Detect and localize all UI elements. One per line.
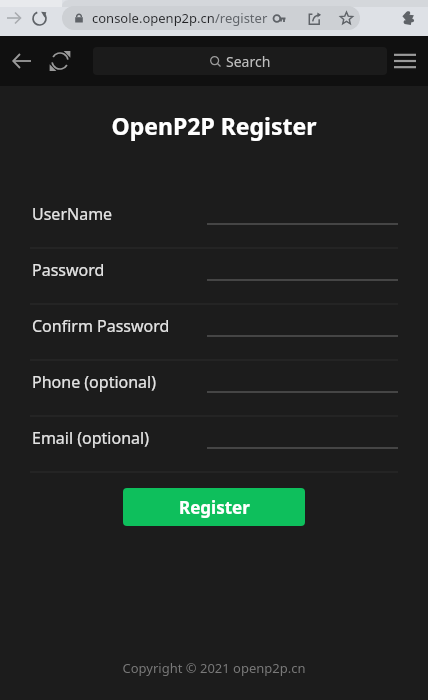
button[interactable]: Back: [8, 47, 36, 75]
staticText: Copyright © 2021 openp2p.cn: [0, 659, 428, 677]
button[interactable]: Confirm Password: [0, 305, 428, 361]
staticText: Email (optional): [32, 427, 149, 449]
button[interactable]: Password: [0, 249, 428, 305]
button[interactable]: Phone (optional): [0, 361, 428, 417]
staticText: Register: [179, 496, 250, 519]
button[interactable]: console.openp2p.cn: [62, 6, 360, 30]
staticText: Password: [32, 259, 105, 281]
staticText: Phone (optional): [32, 371, 157, 393]
staticText: OpenP2P Register: [0, 110, 428, 141]
button[interactable]: Register: [123, 488, 305, 526]
button[interactable]: Reload: [27, 6, 51, 30]
staticText: UserName: [32, 203, 113, 225]
staticText: console.openp2p.cn: [92, 9, 215, 27]
button[interactable]: UserName: [0, 193, 428, 249]
button[interactable]: Bookmark: [334, 6, 358, 30]
button[interactable]: Forward: [2, 6, 26, 30]
button[interactable]: Email (optional): [0, 417, 428, 473]
staticText: /register: [215, 9, 268, 27]
button[interactable]: Saved password: [267, 6, 291, 30]
staticText: Confirm Password: [32, 315, 170, 337]
button[interactable]: Share: [302, 6, 326, 30]
staticText: Search: [226, 52, 271, 71]
button[interactable]: Menu: [391, 47, 419, 75]
button[interactable]: Refresh: [46, 47, 74, 75]
button[interactable]: Search: [93, 47, 387, 75]
button[interactable]: Extensions: [396, 6, 420, 30]
